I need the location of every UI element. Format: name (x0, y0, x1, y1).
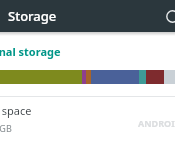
button[interactable]: Total space (0, 97, 175, 137)
staticText: Internal storage (0, 44, 61, 59)
staticText: ANDROID (138, 117, 175, 129)
staticText: 11.97 GB (0, 122, 12, 134)
button[interactable]: Help (162, 0, 175, 32)
staticText: Total space (0, 103, 32, 118)
staticText: Storage (8, 7, 57, 25)
